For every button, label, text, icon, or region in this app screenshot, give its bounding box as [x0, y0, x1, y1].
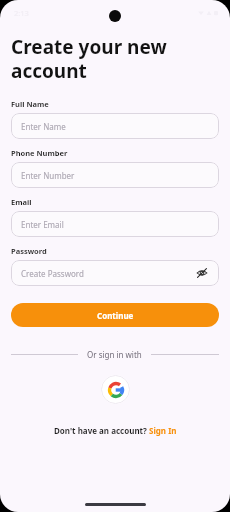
staticText: Email	[11, 197, 32, 207]
staticText: Sign In	[149, 425, 177, 436]
staticText: Password	[11, 246, 47, 256]
button[interactable]: Enter Name	[11, 113, 219, 139]
button[interactable]: Enter Email	[11, 211, 219, 237]
staticText: Or sign in with	[87, 349, 142, 360]
button[interactable]: Show password	[195, 266, 209, 280]
staticText: Create Password	[21, 268, 195, 279]
staticText: Enter Name	[21, 121, 209, 132]
staticText: Enter Email	[21, 219, 209, 230]
button[interactable]: Continue	[11, 303, 219, 327]
staticText: Continue	[97, 310, 134, 321]
button[interactable]: Create Password	[11, 260, 219, 286]
staticText: Create your new account	[11, 34, 167, 83]
staticText: Enter Number	[21, 170, 209, 181]
staticText: Full Name	[11, 99, 49, 109]
button[interactable]: Enter Number	[11, 162, 219, 188]
staticText: Don't have an account?	[54, 425, 149, 436]
button[interactable]: Sign In	[149, 425, 177, 436]
button[interactable]: Sign in with Google	[101, 375, 130, 404]
staticText: Phone Number	[11, 148, 68, 158]
